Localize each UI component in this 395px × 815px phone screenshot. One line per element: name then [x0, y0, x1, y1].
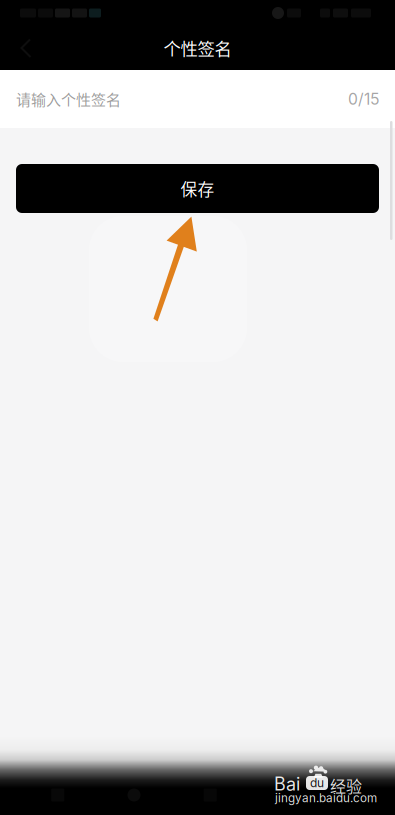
staticText: du	[310, 776, 324, 790]
staticText: 保存	[180, 176, 214, 200]
staticText: jingyan.baidu.com	[275, 791, 377, 805]
staticText: Bai	[274, 773, 300, 795]
button[interactable]: Recents	[192, 776, 229, 813]
button[interactable]: Back	[39, 776, 76, 813]
staticText: 0/15	[348, 89, 380, 108]
button[interactable]: 请输入个性签名	[0, 70, 395, 128]
staticText: 个性签名	[163, 35, 231, 61]
button[interactable]: 保存	[16, 164, 379, 213]
staticText: 经验	[330, 774, 362, 797]
staticText: 请输入个性签名	[16, 88, 121, 110]
button[interactable]: Home	[115, 776, 152, 813]
